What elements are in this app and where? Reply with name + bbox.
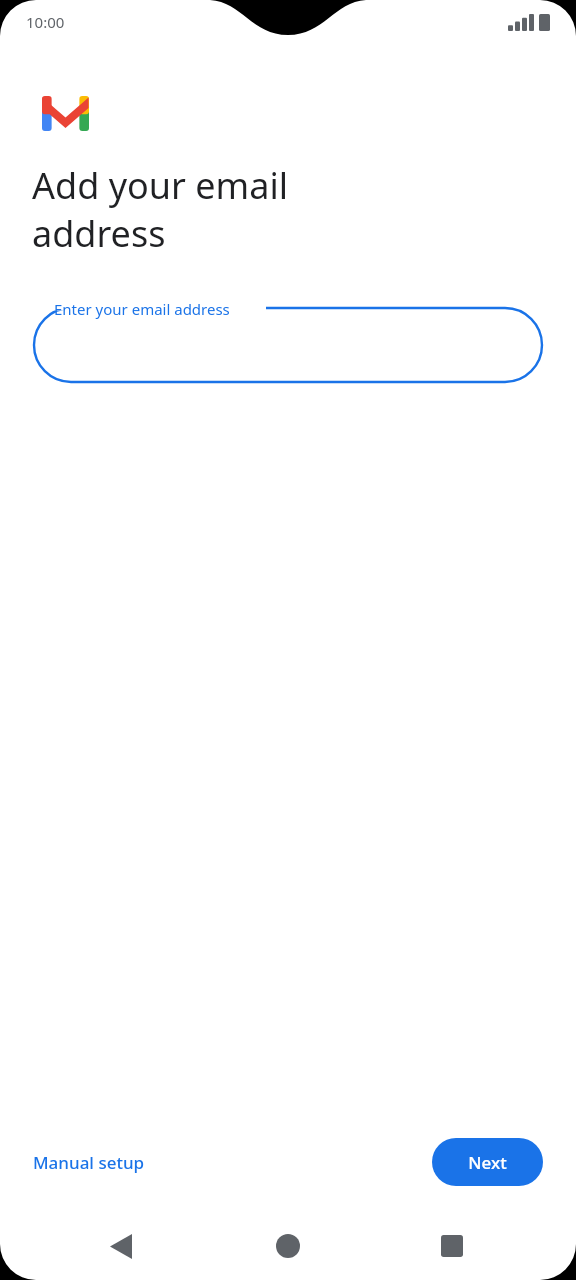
button[interactable]: Back: [91, 1216, 151, 1276]
button[interactable]: Home: [258, 1216, 318, 1276]
staticText: 10:00: [26, 12, 65, 32]
staticText: Enter your email address: [54, 299, 230, 319]
staticText: Next: [468, 1151, 507, 1174]
button[interactable]: Enter your email address: [0, 297, 576, 385]
button[interactable]: Recent apps: [422, 1216, 482, 1276]
staticText: Manual setup: [33, 1151, 145, 1174]
staticText: Add your email address: [32, 161, 288, 257]
button[interactable]: Manual setup: [20, 1142, 158, 1183]
button[interactable]: Next: [432, 1138, 543, 1186]
